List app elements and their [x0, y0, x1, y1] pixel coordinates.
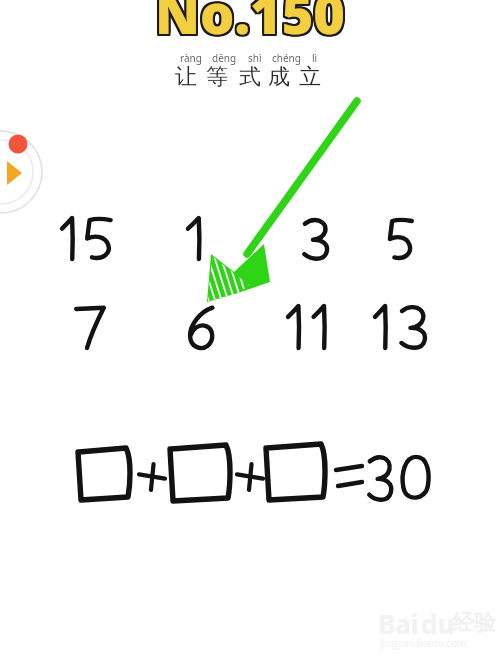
- button[interactable]: Play video: [0, 145, 22, 187]
